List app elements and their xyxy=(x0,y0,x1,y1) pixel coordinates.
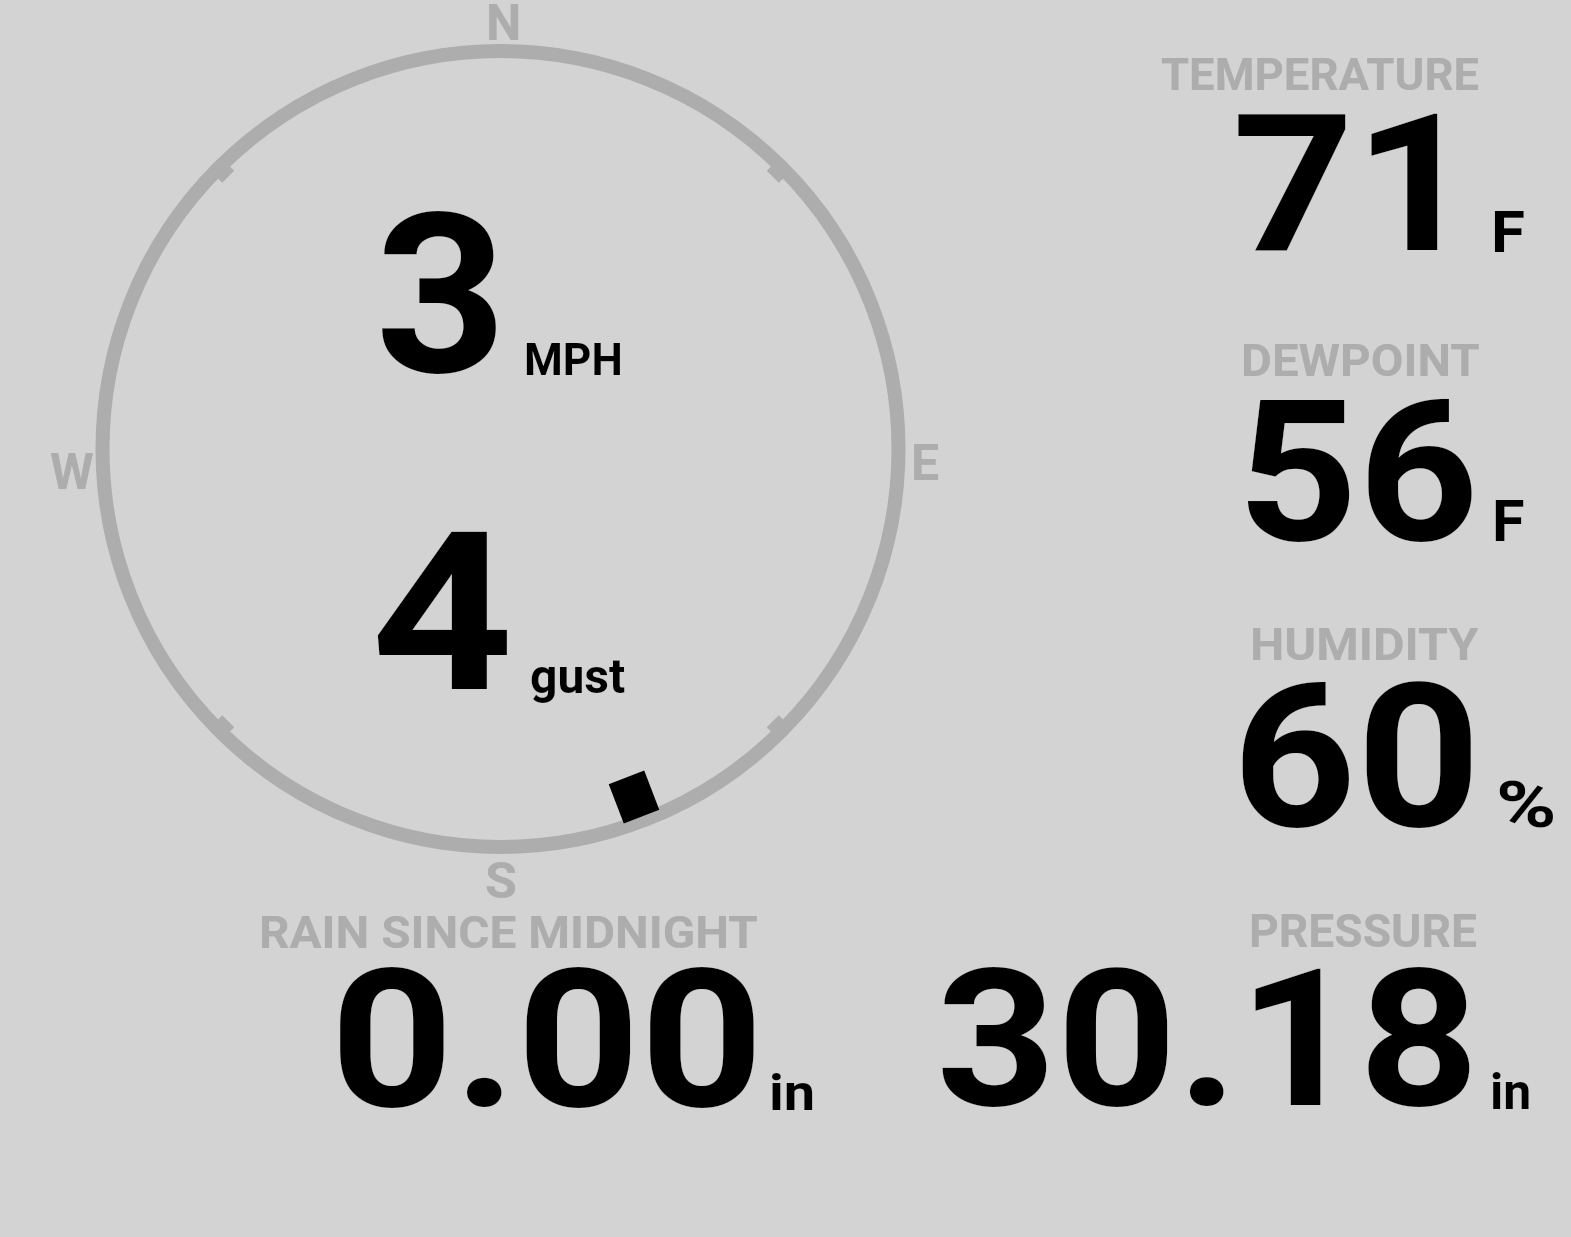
staticText: F xyxy=(1492,488,1525,555)
button[interactable]: Rain since midnight 0.00 inches xyxy=(250,900,830,1115)
staticText: MPH xyxy=(524,334,624,386)
staticText: PRESSURE xyxy=(1249,904,1477,958)
staticText: 0.00 xyxy=(330,927,764,1153)
staticText: 60 xyxy=(1232,640,1482,874)
staticText: % xyxy=(1496,768,1557,843)
staticText: in xyxy=(1490,1063,1532,1122)
staticText: 3 xyxy=(375,166,508,426)
staticText: W xyxy=(50,443,94,502)
staticText: HUMIDITY xyxy=(1250,619,1479,671)
staticText: RAIN SINCE MIDNIGHT xyxy=(259,907,758,959)
staticText: gust xyxy=(530,648,626,704)
staticText: F xyxy=(1491,199,1526,266)
staticText: 30.18 xyxy=(936,928,1479,1152)
staticText: N xyxy=(486,0,522,53)
staticText: 56 xyxy=(1237,358,1479,588)
staticText: E xyxy=(911,434,940,493)
staticText: DEWPOINT xyxy=(1241,335,1480,387)
button[interactable]: Dewpoint 56 degrees Fahrenheit xyxy=(1150,326,1550,551)
staticText: 4 xyxy=(371,485,514,743)
staticText: in xyxy=(769,1064,816,1123)
staticText: S xyxy=(485,852,517,911)
staticText: 71 xyxy=(1232,73,1477,297)
button[interactable]: Wind 3 miles per hour, gusting 4 xyxy=(95,44,906,855)
button[interactable]: Pressure 30.18 inches xyxy=(900,900,1540,1115)
button[interactable]: Humidity 60 percent xyxy=(1150,610,1550,835)
staticText: TEMPERATURE xyxy=(1161,49,1479,101)
button[interactable]: Temperature 71 degrees Fahrenheit xyxy=(1150,40,1550,260)
